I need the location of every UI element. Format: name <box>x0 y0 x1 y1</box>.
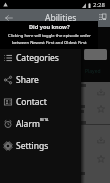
staticText: 2:28 <box>93 1 105 9</box>
button[interactable]: Share <box>0 69 81 91</box>
staticText: Played <box>85 68 101 75</box>
staticText: Alarm <box>16 118 40 130</box>
staticText: Categories <box>16 52 59 64</box>
button[interactable]: Settings <box>0 135 81 157</box>
button[interactable]: Contact <box>0 91 81 113</box>
staticText: Clicking here will toggle the episode or… <box>8 33 91 39</box>
button[interactable]: Did you know? <box>0 21 98 49</box>
staticText: BETA <box>40 117 49 122</box>
button[interactable]: Alarm <box>0 113 81 135</box>
staticText: Share <box>16 74 39 86</box>
staticText: Contact <box>16 96 47 108</box>
staticText: between Newest First and Oldest First <box>12 40 87 46</box>
staticText: Settings <box>16 140 49 152</box>
staticText: Abilities <box>45 12 77 24</box>
button[interactable]: Categories <box>0 47 81 69</box>
button[interactable]: View mode <box>97 11 108 22</box>
staticText: Did you know? <box>29 23 70 31</box>
button[interactable]: Back <box>3 12 14 23</box>
